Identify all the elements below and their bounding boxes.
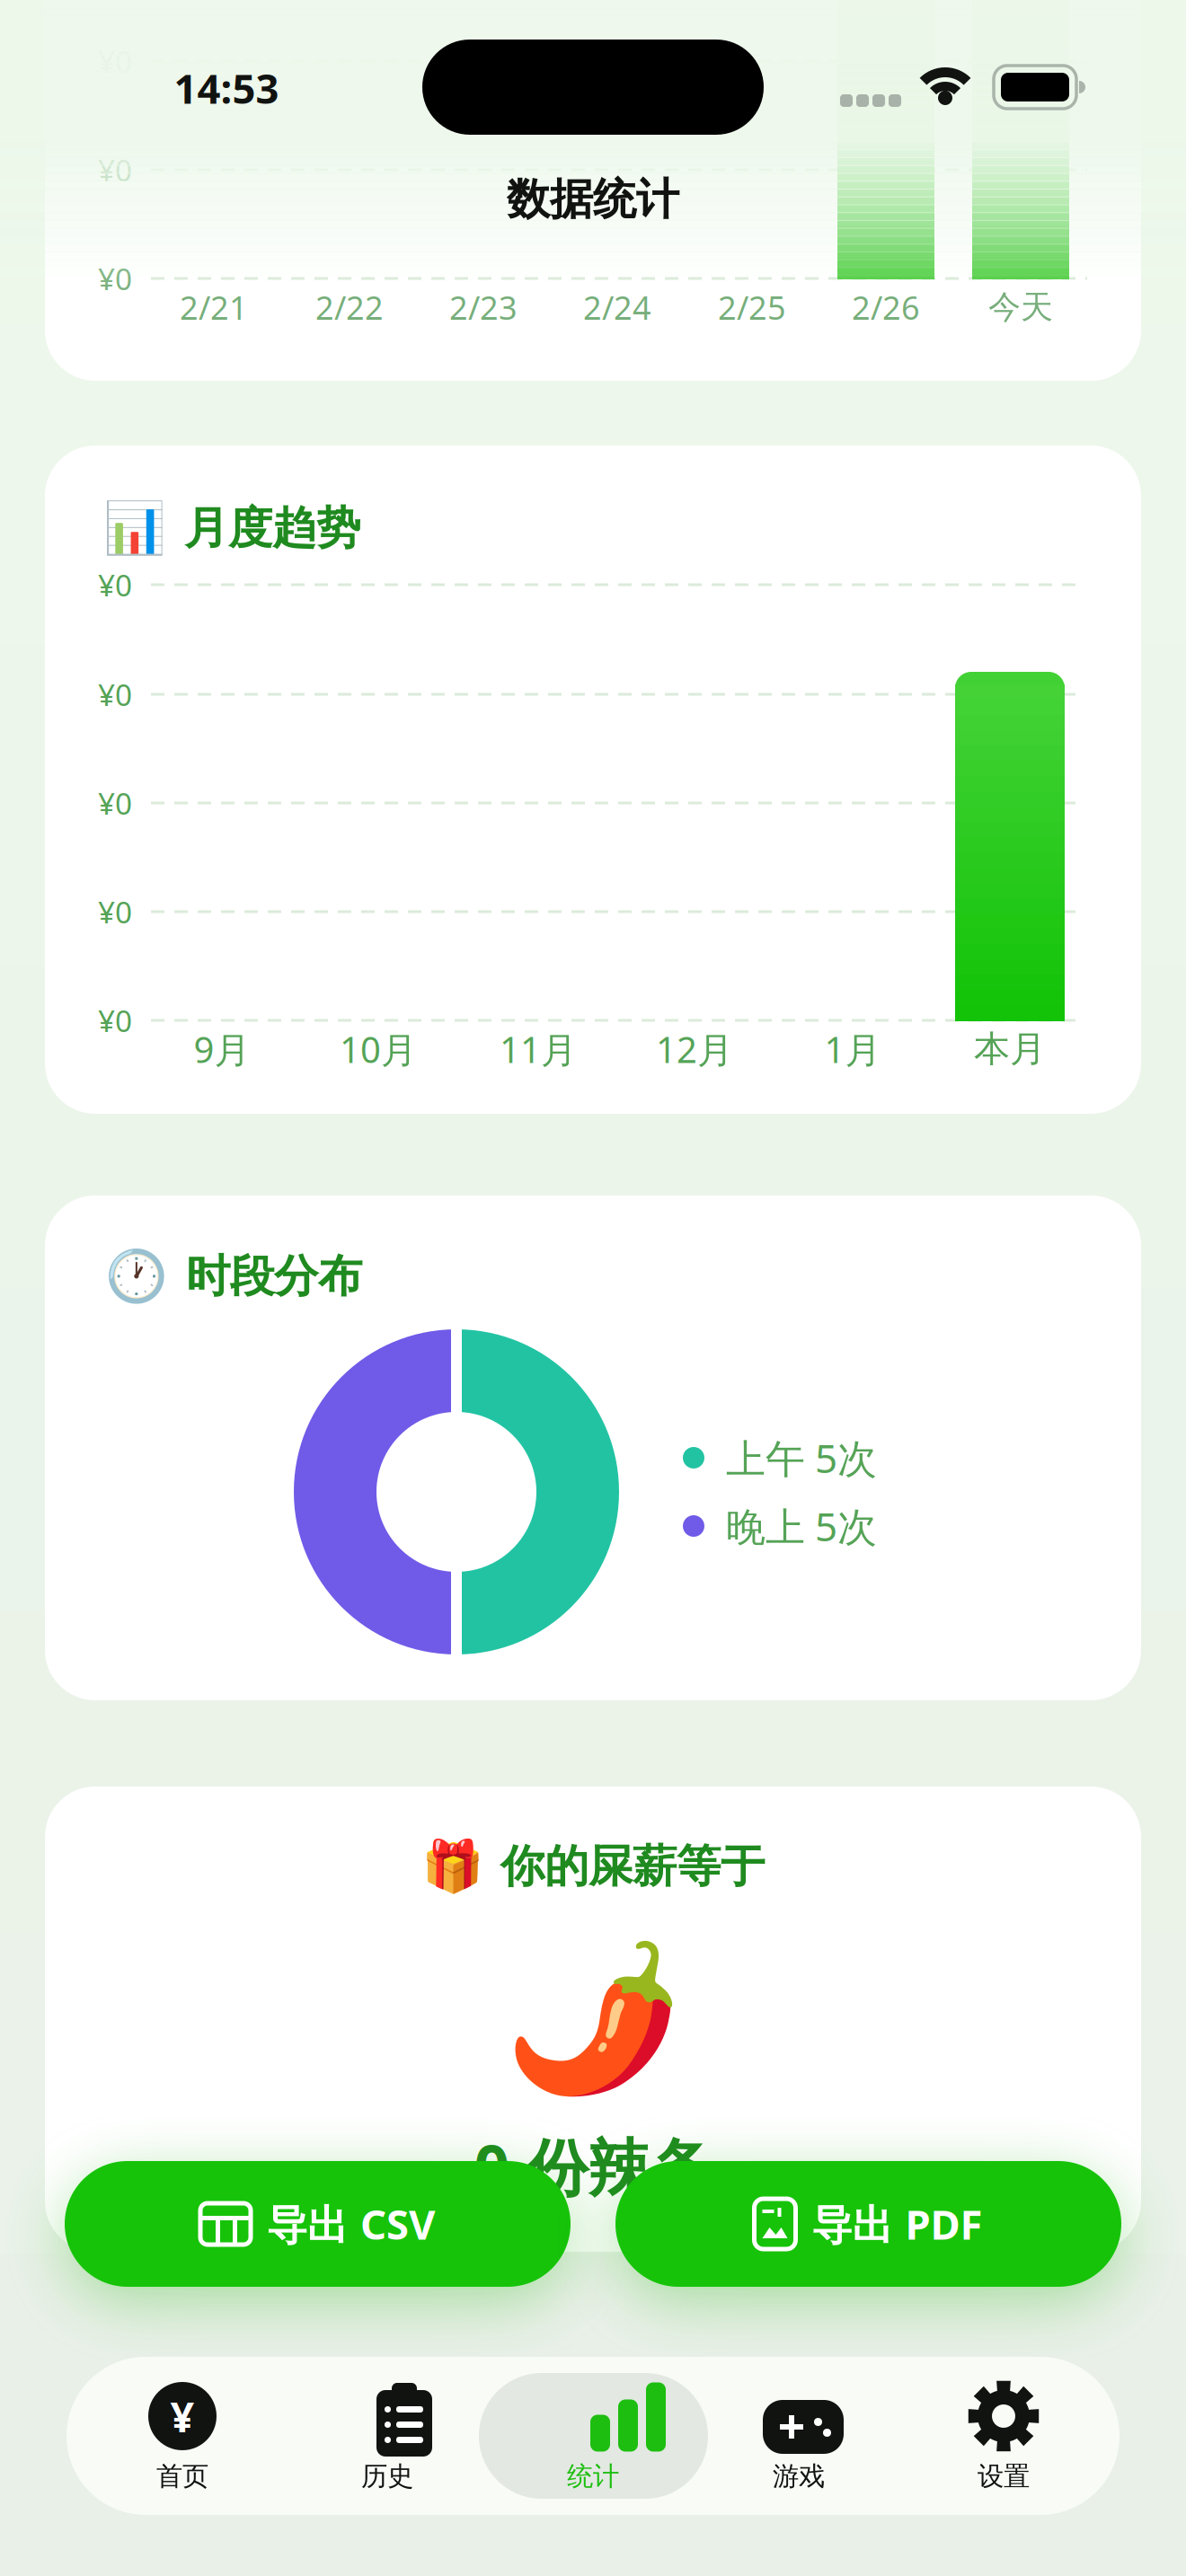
staticText: 时段分布 <box>186 1249 362 1304</box>
staticText: 2/22 <box>315 286 384 329</box>
staticText: ¥0 <box>98 259 132 298</box>
staticText: 12月 <box>656 1025 733 1073</box>
staticText: 11月 <box>500 1025 577 1073</box>
staticText: 🌶️ <box>504 1937 682 2101</box>
staticText: 你的屎薪等于 <box>500 1839 765 1894</box>
staticText: 设置 <box>978 2460 1030 2492</box>
button[interactable]: 设置 <box>923 2371 1084 2501</box>
staticText: 2/25 <box>718 286 786 329</box>
staticText: ¥0 <box>98 783 132 823</box>
staticText: 统计 <box>567 2460 619 2492</box>
staticText: 导出 CSV <box>267 2197 435 2251</box>
staticText: ¥0 <box>98 1000 132 1040</box>
staticText: 2/21 <box>180 286 248 329</box>
staticText: ¥0 <box>98 565 132 605</box>
staticText: 🎁 <box>421 1838 484 1895</box>
staticText: 2/26 <box>852 286 920 329</box>
staticText: 晚上 5次 <box>726 1500 877 1552</box>
button[interactable]: 统计 <box>512 2371 674 2501</box>
button[interactable]: 游戏 <box>718 2371 880 2501</box>
staticText: ¥0 <box>98 892 132 932</box>
staticText: 1月 <box>824 1025 881 1073</box>
staticText: 今天 <box>988 287 1053 327</box>
button[interactable]: 导出 PDF <box>615 2161 1121 2287</box>
staticText: 0 份辣条 <box>474 2125 712 2208</box>
staticText: ¥ <box>170 2388 195 2444</box>
button[interactable]: 历史 <box>306 2371 468 2501</box>
staticText: 首页 <box>156 2460 208 2492</box>
staticText: 数据统计 <box>507 173 679 226</box>
staticText: 2/24 <box>583 286 651 329</box>
staticText: 本月 <box>974 1027 1046 1071</box>
staticText: 上午 5次 <box>726 1432 877 1484</box>
staticText: 导出 PDF <box>812 2197 982 2251</box>
staticText: 14:53 <box>174 61 279 115</box>
button[interactable]: 导出 CSV <box>65 2161 571 2287</box>
staticText: ¥0 <box>98 150 132 190</box>
staticText: 9月 <box>194 1025 250 1073</box>
staticText: 📊 <box>103 499 166 557</box>
staticText: 🕐 <box>105 1248 168 1305</box>
staticText: 月度趋势 <box>184 501 360 555</box>
staticText: ¥0 <box>98 674 132 714</box>
staticText: 游戏 <box>773 2460 825 2492</box>
staticText: 10月 <box>340 1025 417 1073</box>
button[interactable]: ¥ <box>102 2371 263 2501</box>
staticText: 历史 <box>361 2460 413 2492</box>
staticText: 2/23 <box>449 286 518 329</box>
